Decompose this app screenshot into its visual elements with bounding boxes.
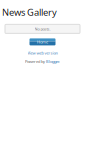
staticText: Blogger.: [46, 59, 60, 64]
button[interactable]: View web version: [27, 50, 57, 56]
button[interactable]: Home: [29, 38, 55, 45]
staticText: News Gallery: [2, 6, 57, 18]
staticText: Powered by: [25, 59, 45, 64]
button[interactable]: Blogger.: [46, 59, 60, 64]
staticText: View web version: [27, 50, 57, 56]
staticText: Home: [37, 39, 48, 44]
staticText: No posts.: [34, 26, 50, 31]
